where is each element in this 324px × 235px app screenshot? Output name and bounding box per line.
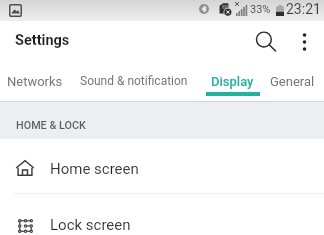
staticText: Networks [7, 74, 63, 89]
button[interactable]: Lock screen [0, 194, 324, 235]
staticText: 33% [250, 3, 271, 16]
button[interactable]: Home screen [0, 139, 324, 194]
button[interactable]: Display [201, 62, 264, 101]
staticText: Lock screen [50, 216, 131, 234]
staticText: Display [211, 74, 254, 89]
staticText: Sound & notification [80, 74, 188, 88]
staticText: General [270, 74, 315, 89]
button[interactable]: Networks [0, 62, 72, 101]
staticText: HOME & LOCK [16, 119, 86, 132]
staticText: Home screen [50, 160, 139, 178]
button[interactable]: Sound & notification [72, 62, 196, 101]
staticText: Settings [15, 32, 70, 49]
button[interactable]: General [261, 62, 324, 101]
button[interactable]: More options [290, 27, 319, 56]
staticText: 23:21 [286, 1, 321, 17]
button[interactable]: Search [250, 26, 282, 58]
